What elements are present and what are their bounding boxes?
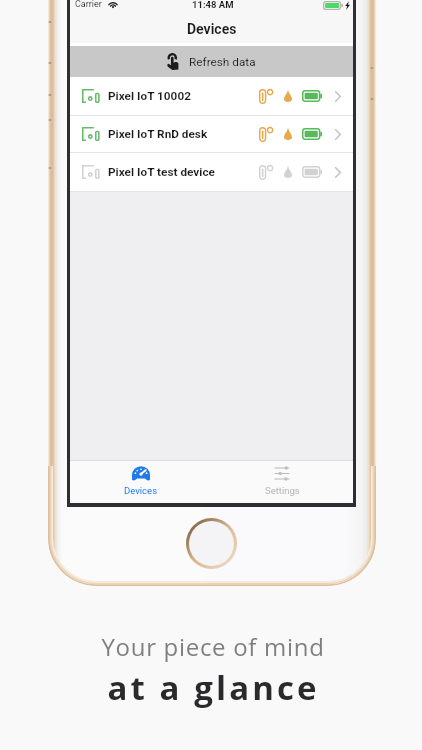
staticText: at a glance [107, 665, 320, 710]
button[interactable]: Pixel IoT test device [70, 153, 353, 192]
button[interactable]: Settings [211, 461, 353, 503]
staticText: Pixel IoT RnD desk [108, 127, 208, 141]
staticText: Refresh data [189, 55, 256, 69]
staticText: Devices [124, 485, 158, 496]
staticText: 11:48 AM [192, 0, 234, 10]
button[interactable]: Pixel IoT RnD desk [70, 116, 353, 153]
button[interactable]: Pixel IoT 10002 [70, 77, 353, 116]
staticText: Your piece of mind [101, 630, 325, 663]
staticText: Pixel IoT test device [108, 165, 215, 179]
button[interactable]: Refresh data [70, 46, 353, 77]
staticText: Pixel IoT 10002 [108, 89, 191, 103]
staticText: Carrier [75, 0, 102, 10]
button[interactable]: Devices [70, 461, 211, 503]
staticText: Settings [265, 485, 300, 496]
staticText: Devices [187, 21, 237, 37]
